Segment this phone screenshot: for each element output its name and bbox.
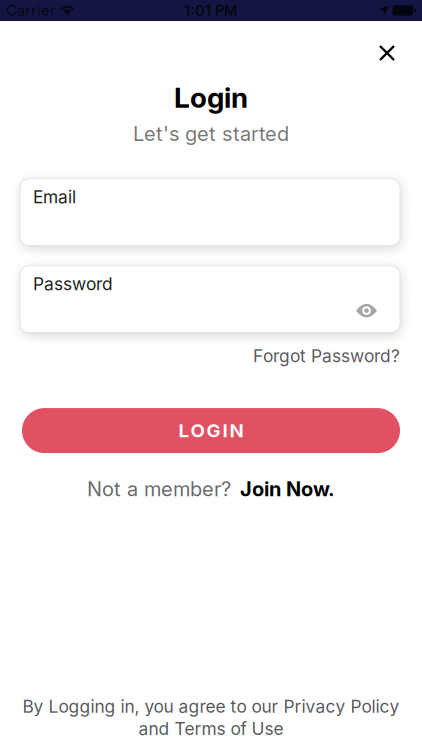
staticText: Email	[33, 187, 76, 207]
staticText: Not a member?	[87, 477, 231, 501]
staticText: By Logging in, you agree to our Privacy …	[22, 696, 399, 716]
staticText: 1:01 PM	[184, 2, 238, 19]
button[interactable]: Show password	[356, 304, 400, 333]
staticText: Login	[174, 81, 248, 114]
staticText: and Terms of Use	[138, 719, 283, 739]
staticText: Let's get started	[133, 122, 289, 146]
staticText: Password	[33, 274, 113, 294]
staticText: Join Now.	[240, 477, 335, 501]
button[interactable]: Join Now.	[240, 477, 335, 501]
button[interactable]: Close	[372, 38, 402, 68]
staticText: LOGIN	[178, 420, 243, 442]
staticText: Forgot Password?	[253, 346, 400, 366]
button[interactable]: Forgot Password?	[253, 346, 400, 366]
staticText: Carrier	[6, 2, 56, 19]
button[interactable]: LOGIN	[22, 408, 400, 453]
